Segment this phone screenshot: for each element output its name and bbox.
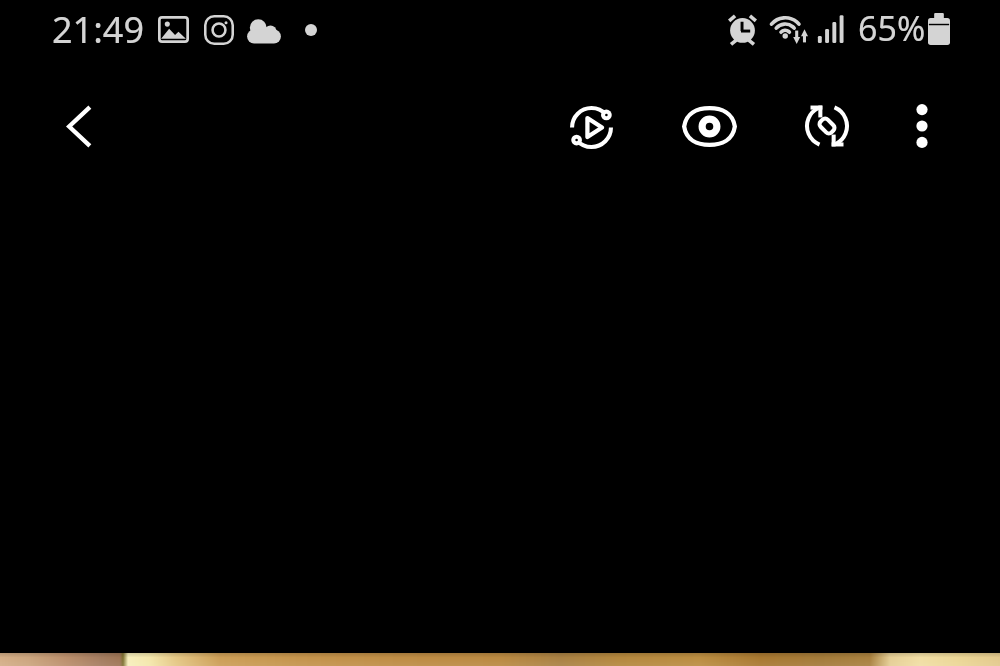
button[interactable]: Rotate	[799, 98, 855, 154]
button[interactable]: Back	[51, 98, 107, 154]
button[interactable]: More options	[894, 98, 950, 154]
button[interactable]: Preview	[681, 98, 737, 154]
staticText: 21:49	[52, 5, 145, 49]
button[interactable]: Motion photo	[563, 99, 619, 155]
staticText: 65%	[858, 5, 926, 49]
